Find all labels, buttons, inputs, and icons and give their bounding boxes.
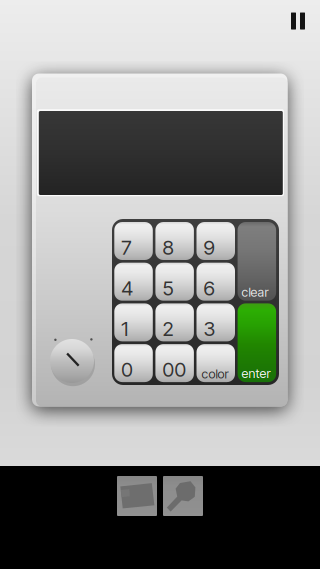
staticText: 1 [121, 317, 128, 341]
button[interactable]: 3 [196, 303, 235, 341]
staticText: 8 [162, 235, 173, 259]
button[interactable]: Key card [117, 476, 157, 516]
button[interactable]: 00 [155, 344, 194, 382]
button[interactable]: 7 [114, 222, 153, 260]
staticText: 00 [162, 357, 186, 382]
staticText: 4 [121, 276, 133, 300]
button[interactable]: color [196, 344, 235, 382]
button[interactable]: 6 [196, 263, 235, 301]
button[interactable]: 9 [196, 222, 235, 260]
button[interactable]: 8 [155, 222, 194, 260]
button[interactable]: 4 [114, 263, 153, 301]
button[interactable]: 0 [114, 344, 153, 382]
staticText: 6 [203, 276, 214, 300]
button[interactable]: clear [238, 222, 276, 301]
button[interactable]: Pause [278, 0, 318, 42]
staticText: 3 [203, 317, 215, 341]
staticText: 7 [121, 235, 131, 259]
button[interactable]: 2 [155, 303, 194, 341]
staticText: enter [242, 366, 271, 381]
staticText: 5 [162, 276, 173, 300]
staticText: 2 [162, 317, 173, 341]
button[interactable]: Key [163, 476, 203, 516]
button[interactable]: 5 [155, 263, 194, 301]
button[interactable]: 1 [114, 303, 153, 341]
staticText: color [201, 366, 228, 382]
staticText: 9 [203, 235, 214, 259]
button[interactable]: enter [238, 303, 276, 382]
staticText: clear [242, 284, 269, 300]
staticText: 0 [121, 357, 133, 382]
